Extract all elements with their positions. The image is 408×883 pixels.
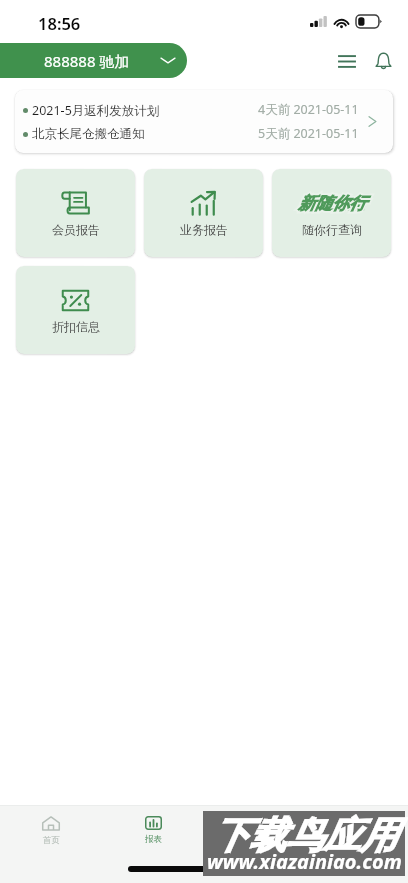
- button[interactable]: 折扣信息: [16, 266, 135, 354]
- staticText: 业务报告: [180, 222, 228, 237]
- button[interactable]: 业务报告: [144, 169, 263, 257]
- staticText: 会员报告: [52, 222, 100, 237]
- button[interactable]: Menu: [330, 44, 364, 78]
- staticText: 随你行查询: [302, 222, 362, 237]
- button[interactable]: Notifications: [366, 44, 400, 78]
- button[interactable]: 新随你行: [272, 169, 391, 257]
- staticText: 首页: [43, 835, 60, 846]
- staticText: 4天前 2021-05-11: [258, 101, 359, 118]
- staticText: 新随你行: [298, 193, 366, 214]
- staticText: www.xiazainiao.com: [207, 848, 402, 875]
- button[interactable]: 报表: [102, 806, 204, 851]
- staticText: 下载鸟应用: [212, 812, 397, 859]
- staticText: 888888 驰加: [44, 51, 130, 71]
- staticText: 折扣信息: [52, 319, 100, 334]
- button[interactable]: 会员报告: [16, 169, 135, 257]
- staticText: 新随你行: [298, 193, 366, 214]
- staticText: 5天前 2021-05-11: [258, 125, 359, 142]
- staticText: 18:56: [38, 12, 81, 34]
- staticText: 报表: [145, 834, 162, 845]
- button[interactable]: 888888 驰加: [0, 43, 187, 78]
- button[interactable]: 2021-5月返利发放计划: [15, 90, 393, 153]
- button[interactable]: 首页: [0, 806, 102, 851]
- staticText: 北京长尾仓搬仓通知: [32, 126, 145, 142]
- staticText: 2021-5月返利发放计划: [32, 102, 160, 119]
